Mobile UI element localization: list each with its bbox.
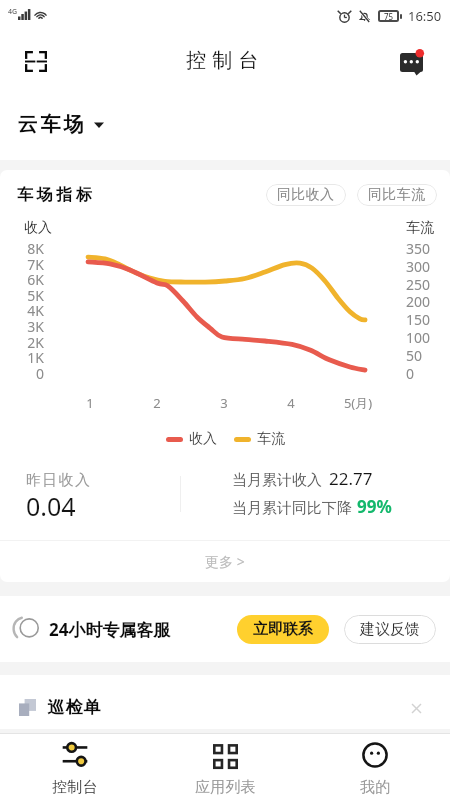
staticText: 控制台: [52, 778, 98, 797]
staticText: 0: [406, 364, 415, 383]
button[interactable]: 同比收入: [266, 184, 346, 206]
staticText: 同比收入: [277, 186, 335, 204]
button[interactable]: Scan QR code: [14, 39, 58, 83]
staticText: 1: [65, 394, 115, 412]
staticText: 50: [406, 346, 423, 365]
staticText: 0: [14, 364, 44, 383]
staticText: 8K: [14, 239, 44, 258]
staticText: 云车场: [16, 112, 85, 137]
staticText: 车场指标: [17, 185, 96, 205]
staticText: 建议反馈: [360, 620, 420, 639]
button[interactable]: 控制台: [0, 734, 150, 800]
staticText: 同比车流: [368, 186, 426, 204]
staticText: 车流: [257, 430, 285, 448]
staticText: 车流: [406, 219, 434, 237]
staticText: 350: [406, 239, 431, 258]
button[interactable]: Close: [406, 698, 426, 718]
staticText: 更多 >: [205, 552, 245, 571]
staticText: 当月累计收入: [232, 471, 322, 490]
button[interactable]: 云车场: [16, 112, 104, 137]
staticText: 150: [406, 310, 431, 329]
staticText: 7K: [14, 255, 44, 274]
staticText: 99%: [357, 495, 392, 518]
staticText: 控制台: [186, 48, 265, 73]
button[interactable]: 建议反馈: [344, 615, 436, 644]
staticText: 应用列表: [195, 778, 256, 797]
staticText: 2: [132, 394, 182, 412]
staticText: 250: [406, 275, 431, 294]
button[interactable]: Messages: [390, 38, 436, 84]
staticText: 当月累计同比下降: [232, 499, 352, 518]
staticText: 200: [406, 292, 431, 311]
button[interactable]: 我的: [300, 734, 450, 800]
staticText: 4K: [14, 301, 44, 320]
staticText: 巡检单: [47, 697, 101, 718]
staticText: 5K: [14, 286, 44, 305]
staticText: 0.04: [26, 489, 76, 523]
staticText: 100: [406, 328, 431, 347]
staticText: 5(月): [333, 394, 383, 412]
button[interactable]: 更多 >: [0, 541, 450, 582]
staticText: 6K: [14, 270, 44, 289]
staticText: 24小时专属客服: [49, 618, 171, 641]
staticText: 收入: [24, 219, 52, 237]
staticText: 75: [384, 11, 394, 22]
staticText: 昨日收入: [26, 471, 92, 490]
staticText: 3: [199, 394, 249, 412]
staticText: 16:50: [408, 7, 442, 25]
staticText: 我的: [360, 778, 391, 797]
staticText: 1K: [14, 348, 44, 367]
staticText: 立即联系: [253, 620, 313, 639]
staticText: 22.77: [329, 467, 373, 490]
staticText: 2K: [14, 333, 44, 352]
staticText: 收入: [189, 430, 217, 448]
staticText: 300: [406, 257, 431, 276]
staticText: 4: [266, 394, 316, 412]
staticText: 4G: [8, 7, 18, 17]
staticText: 3K: [14, 317, 44, 336]
button[interactable]: 应用列表: [150, 734, 300, 800]
button[interactable]: 立即联系: [237, 615, 329, 644]
button[interactable]: 同比车流: [357, 184, 437, 206]
